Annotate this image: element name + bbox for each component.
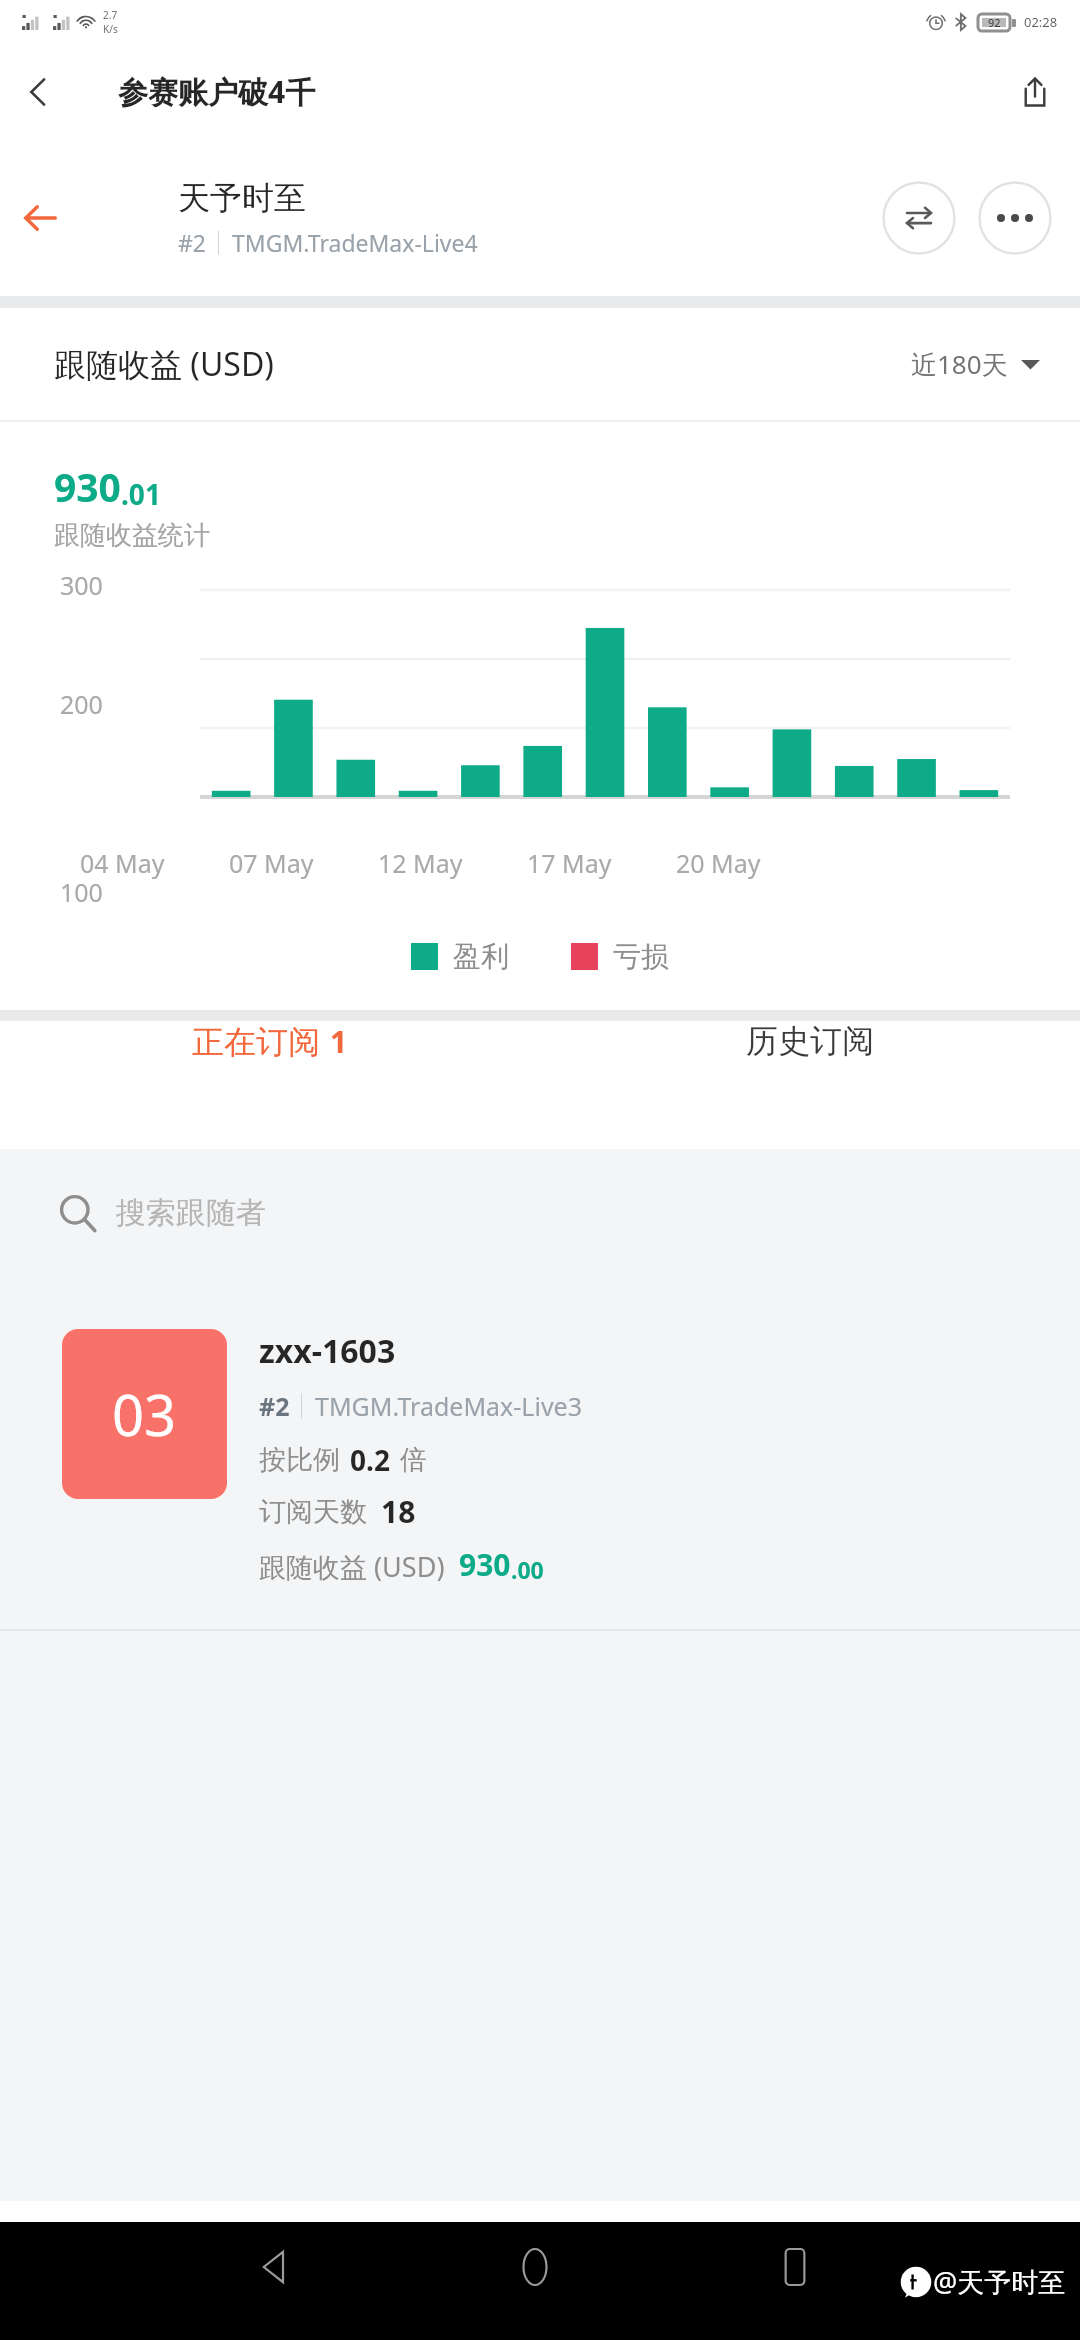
staticText: 跟随收益统计 [54, 519, 210, 552]
staticText: 930 [459, 1544, 511, 1585]
staticText: 07 May [229, 846, 314, 880]
staticText: 12 May [378, 846, 463, 880]
staticText: 100 [60, 875, 103, 902]
button[interactable]: Switch [882, 181, 956, 255]
staticText: 930 [54, 460, 121, 513]
staticText: 跟随收益 (USD) [259, 1548, 445, 1585]
button[interactable]: Share [990, 43, 1080, 140]
staticText: #2 [178, 227, 207, 258]
staticText: 0.2 [350, 1441, 390, 1479]
staticText: 参赛账户破4千 [118, 71, 316, 112]
staticText: 03 [112, 1376, 177, 1452]
staticText: K/s [103, 22, 118, 36]
button[interactable]: 盈利 [411, 939, 509, 974]
staticText: 跟随收益 (USD) [54, 342, 274, 386]
staticText: TMGM.TradeMax-Live4 [232, 227, 478, 258]
staticText: .01 [121, 475, 161, 513]
staticText: 按比例 [259, 1443, 340, 1477]
button[interactable]: 历史订阅 [540, 1021, 1080, 1061]
staticText: @天予时至 [933, 2263, 1066, 2300]
button[interactable]: Back [230, 2222, 320, 2312]
staticText: 04 May [80, 846, 165, 880]
button[interactable]: Back [0, 43, 76, 140]
staticText: 历史订阅 [746, 1021, 874, 1061]
button[interactable]: Home [490, 2222, 580, 2312]
staticText: 1 [330, 1021, 348, 1062]
staticText: 18 [381, 1491, 416, 1532]
staticText: .00 [511, 1554, 544, 1585]
button[interactable]: 跟随收益 (USD) [0, 308, 1080, 420]
button[interactable]: 03 [0, 1277, 1080, 1631]
staticText: 倍 [400, 1443, 427, 1477]
staticText: 订阅天数 [259, 1495, 367, 1529]
staticText: zxx-1603 [259, 1329, 396, 1373]
staticText: 2.7 [103, 8, 118, 22]
button[interactable]: Recents [750, 2222, 840, 2312]
staticText: 正在订阅 [192, 1022, 320, 1062]
staticText: 亏损 [613, 939, 669, 974]
button[interactable]: 正在订阅 [0, 1021, 540, 1062]
staticText: 92 [988, 15, 1001, 30]
staticText: 300 [60, 568, 103, 602]
staticText: 搜索跟随者 [116, 1194, 266, 1232]
button[interactable]: Previous [0, 168, 80, 268]
staticText: 天予时至 [178, 178, 306, 218]
staticText: 近180天 [911, 346, 1008, 382]
staticText: 17 May [527, 846, 612, 880]
button[interactable]: More [978, 181, 1052, 255]
staticText: 200 [60, 687, 103, 721]
staticText: TMGM.TradeMax-Live3 [315, 1389, 583, 1423]
staticText: #2 [259, 1389, 290, 1423]
staticText: 20 May [676, 846, 761, 880]
button[interactable]: 亏损 [571, 939, 669, 974]
staticText: 02:28 [1024, 13, 1058, 31]
staticText: 盈利 [453, 939, 509, 974]
button[interactable]: 搜索跟随者 [0, 1149, 1080, 1277]
